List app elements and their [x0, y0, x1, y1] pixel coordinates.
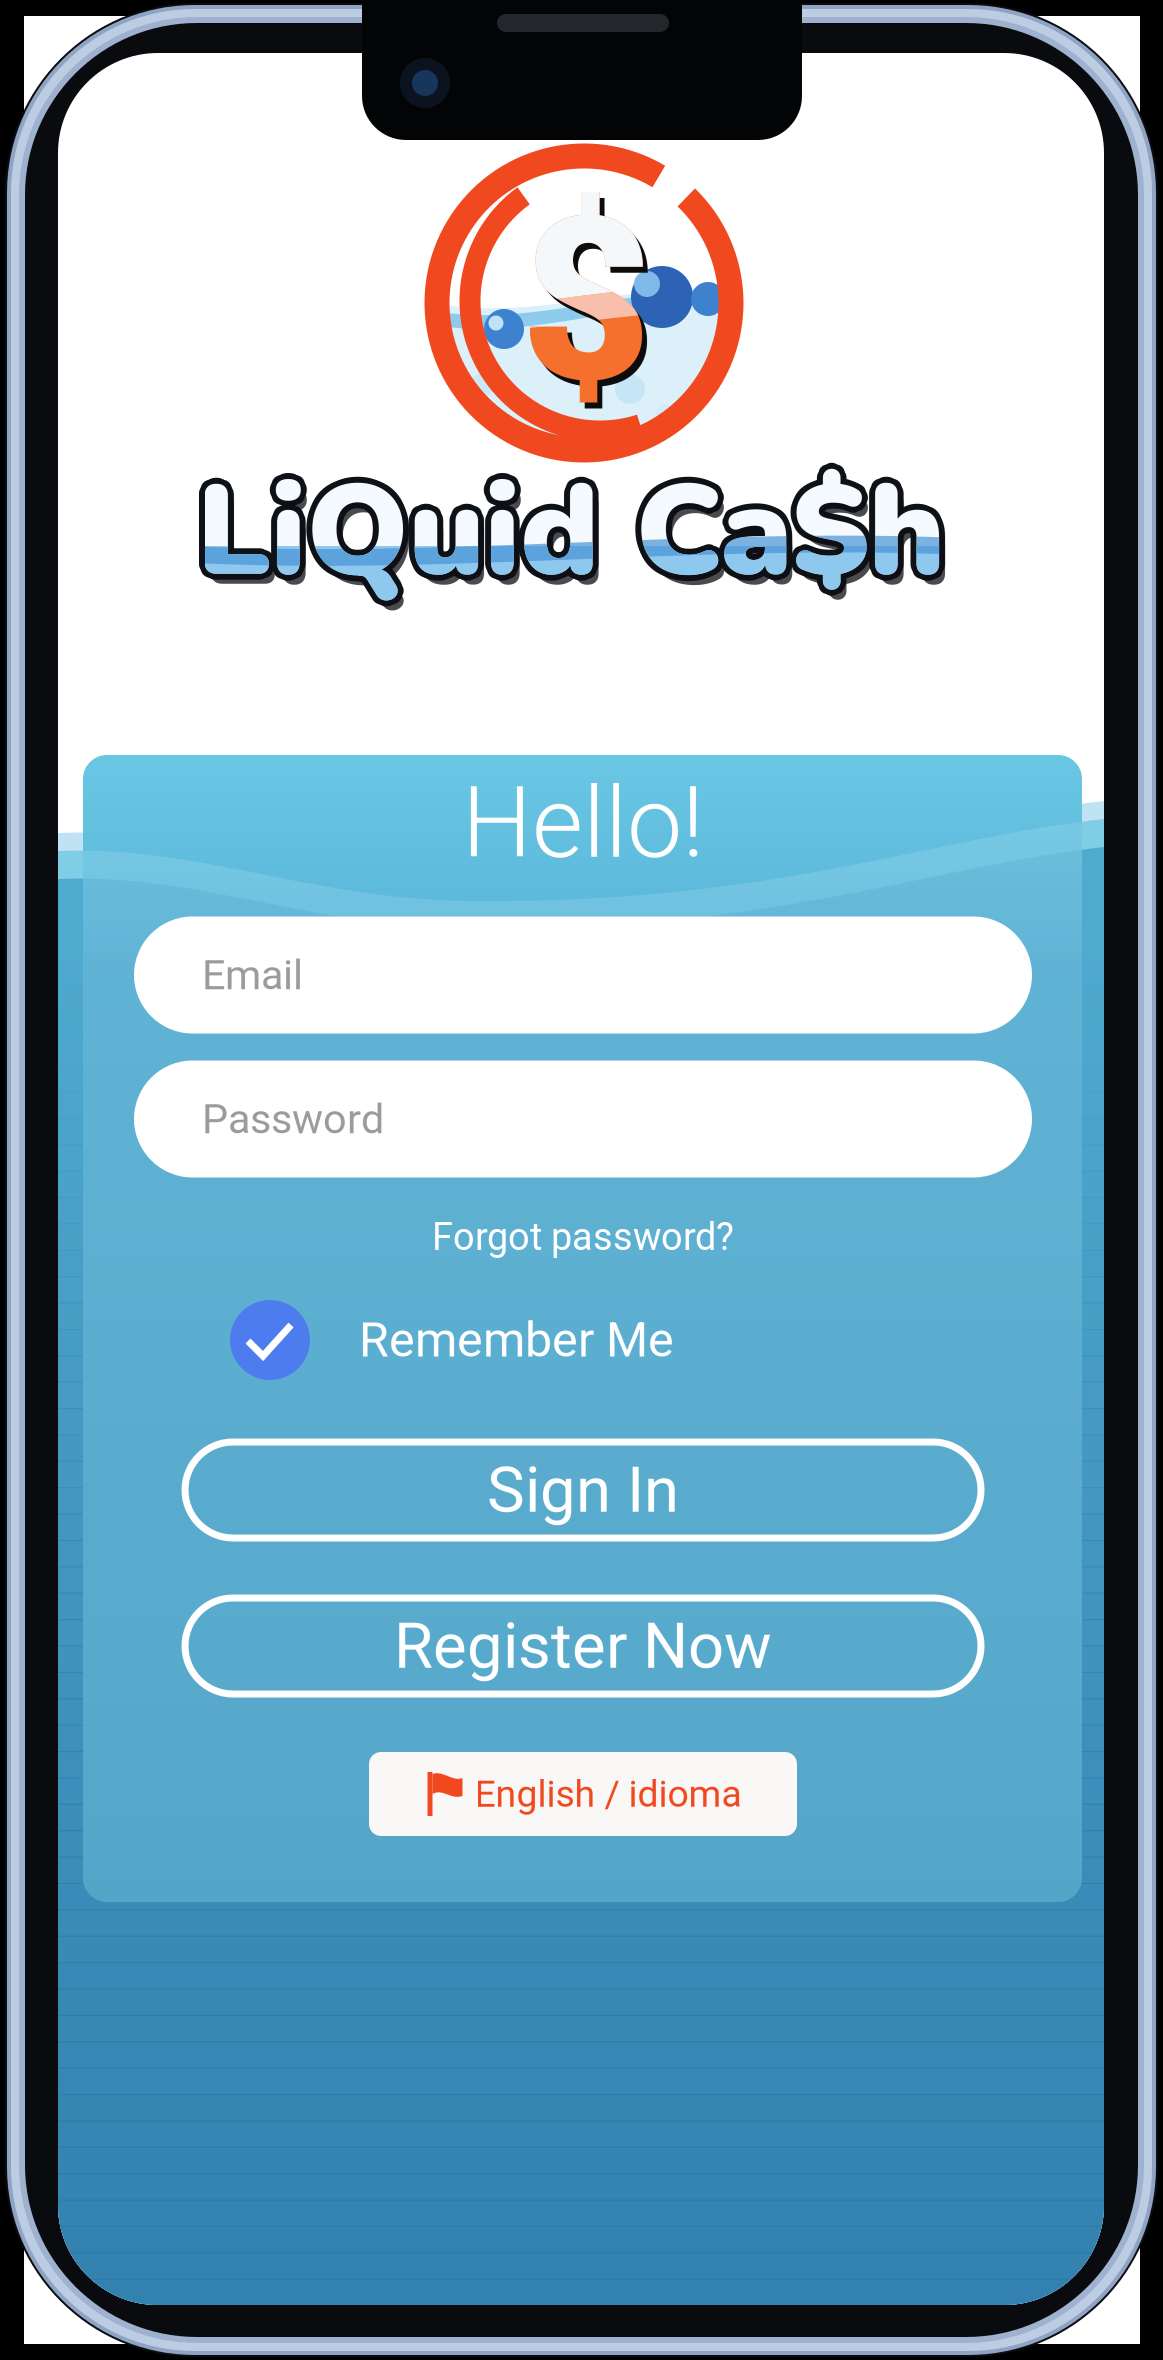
staticText: LiQuid Ca$h: [196, 446, 945, 618]
staticText: LiQuid Ca$h: [202, 456, 951, 628]
staticText: LiQuid Ca$h: [192, 450, 941, 623]
staticText: LiQuid Ca$h: [196, 446, 945, 618]
staticText: Remember Me: [359, 1312, 674, 1368]
staticText: $: [525, 174, 656, 440]
staticText: Sign In: [487, 1453, 679, 1527]
button[interactable]: Forgot password?: [353, 1204, 813, 1270]
staticText: Password: [202, 1095, 384, 1143]
staticText: $: [520, 168, 651, 434]
staticText: $: [520, 168, 651, 434]
staticText: LiQuid Ca$h: [201, 441, 950, 614]
staticText: LiQuid Ca$h: [190, 446, 939, 618]
staticText: Forgot password?: [432, 1215, 734, 1259]
button[interactable]: Register Now: [185, 1598, 981, 1694]
staticText: LiQuid Ca$h: [196, 446, 945, 618]
staticText: LiQuid Ca$h: [196, 452, 945, 624]
staticText: $: [520, 168, 651, 434]
staticText: LiQuid Ca$h: [192, 441, 941, 614]
button[interactable]: Sign In: [185, 1442, 981, 1538]
staticText: Register Now: [394, 1609, 772, 1683]
staticText: English / idioma: [474, 1772, 741, 1816]
staticText: LiQuid Ca$h: [202, 446, 951, 618]
staticText: Hello!: [462, 765, 704, 881]
staticText: Email: [202, 951, 303, 999]
staticText: LiQuid Ca$h: [201, 450, 950, 623]
staticText: LiQuid Ca$h: [196, 440, 945, 612]
button[interactable]: Remember Me: [230, 1292, 954, 1388]
button[interactable]: English / idioma: [369, 1752, 797, 1836]
